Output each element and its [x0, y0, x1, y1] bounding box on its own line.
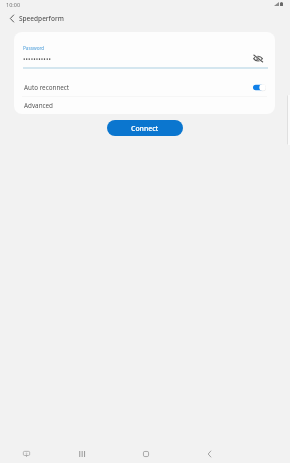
button[interactable]: Auto reconnect: [253, 84, 266, 91]
staticText: •••••••••••: [23, 55, 51, 64]
staticText: 10:00: [6, 1, 21, 8]
button[interactable]: Advanced: [14, 97, 275, 113]
button[interactable]: Auto reconnect: [14, 74, 275, 100]
button[interactable]: Back: [195, 435, 223, 463]
button[interactable]: Show password: [251, 51, 265, 65]
button[interactable]: Recent apps: [68, 435, 96, 463]
staticText: Auto reconnect: [24, 83, 70, 92]
button[interactable]: Hide keyboard: [12, 435, 40, 463]
staticText: Connect: [131, 124, 159, 133]
staticText: Advanced: [24, 101, 53, 110]
staticText: Speedperform: [19, 14, 64, 23]
button[interactable]: Connect: [107, 120, 183, 136]
button[interactable]: Home: [132, 435, 160, 463]
staticText: Password: [23, 45, 45, 51]
button[interactable]: Navigate up: [4, 11, 19, 26]
